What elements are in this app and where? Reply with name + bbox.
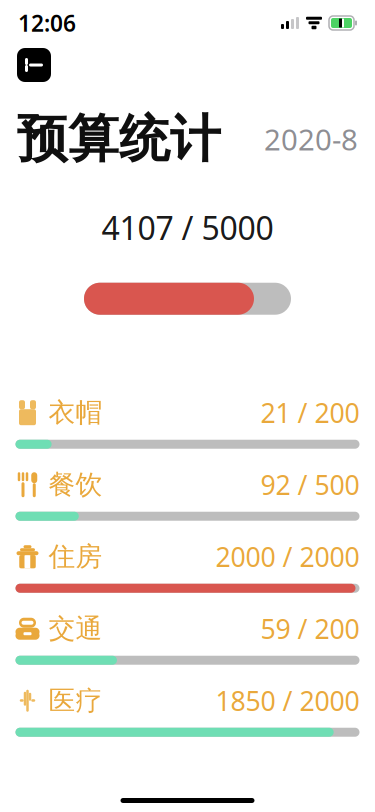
staticText: 医疗 [48,684,102,717]
staticText: 2020-8 [264,120,358,159]
button[interactable]: 医疗 [0,687,375,737]
button[interactable]: 衣帽 [0,399,375,449]
button[interactable]: 餐饮 [0,471,375,521]
button[interactable]: Back [17,48,51,82]
staticText: 59 / 200 [260,611,359,646]
staticText: 12:06 [18,8,76,38]
staticText: 住房 [48,540,102,573]
staticText: 餐饮 [48,468,102,501]
staticText: 4107 / 5000 [101,206,273,249]
staticText: 2000 / 2000 [215,539,359,574]
staticText: 1850 / 2000 [215,683,359,718]
staticText: 92 / 500 [260,467,359,502]
staticText: 交通 [48,612,102,645]
staticText: 衣帽 [48,396,102,429]
staticText: 预算统计 [17,108,221,170]
staticText: 21 / 200 [260,395,359,430]
button[interactable]: 住房 [0,543,375,593]
button[interactable]: 交通 [0,615,375,665]
